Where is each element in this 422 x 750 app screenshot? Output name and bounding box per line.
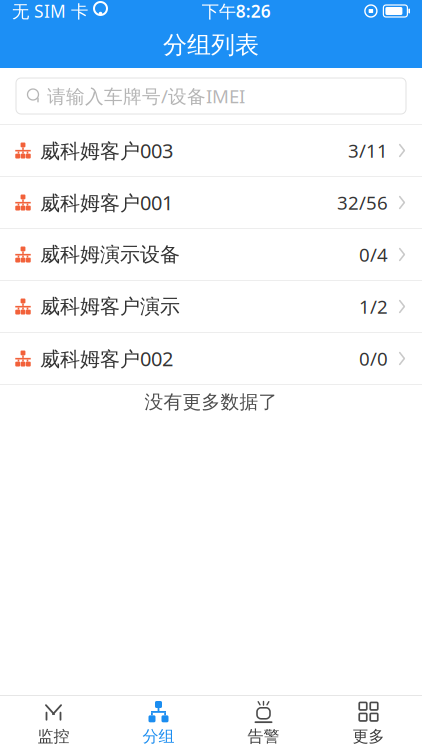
button[interactable]: 监控	[1, 696, 106, 750]
button[interactable]: 请输入车牌号/设备IMEI	[16, 78, 406, 114]
button[interactable]: 威科姆客户002	[0, 333, 422, 384]
button[interactable]: 威科姆客户演示	[0, 281, 422, 332]
staticText: 威科姆客户002	[40, 345, 173, 372]
button[interactable]: 分组	[106, 696, 211, 750]
staticText: 分组	[142, 727, 174, 746]
button[interactable]: 更多	[316, 696, 421, 750]
staticText: 3/11	[348, 138, 388, 163]
staticText: 0/0	[359, 346, 388, 371]
staticText: 威科姆客户003	[40, 137, 173, 164]
button[interactable]: 威科姆客户003	[0, 125, 422, 176]
staticText: 0/4	[359, 242, 388, 267]
staticText: 32/56	[337, 190, 388, 215]
staticText: 告警	[247, 727, 279, 746]
staticText: 威科姆客户001	[40, 189, 173, 216]
staticText: 下午8:26	[202, 0, 271, 22]
staticText: 分组列表	[163, 30, 259, 60]
button[interactable]: 告警	[211, 696, 316, 750]
staticText: 更多	[352, 727, 384, 746]
staticText: 1/2	[359, 294, 388, 319]
staticText: 无 SIM 卡	[12, 0, 88, 22]
staticText: 监控	[37, 727, 69, 746]
staticText: 威科姆演示设备	[40, 242, 180, 267]
staticText: 威科姆客户演示	[40, 294, 180, 319]
button[interactable]: 威科姆演示设备	[0, 229, 422, 280]
staticText: 请输入车牌号/设备IMEI	[47, 84, 245, 108]
button[interactable]: 威科姆客户001	[0, 177, 422, 228]
staticText: 没有更多数据了	[144, 390, 277, 413]
